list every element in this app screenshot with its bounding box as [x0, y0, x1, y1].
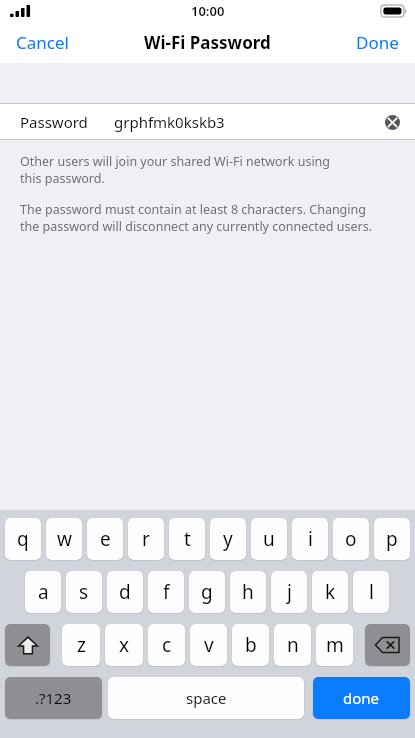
staticText: Other users will join your shared Wi-Fi … [20, 153, 331, 187]
button[interactable]: a [25, 571, 61, 613]
button[interactable]: x [105, 624, 143, 666]
button[interactable]: d [107, 571, 143, 613]
button[interactable]: Cancel [0, 23, 85, 62]
button[interactable]: s [66, 571, 102, 613]
button[interactable]: o [333, 518, 369, 560]
staticText: g [201, 579, 213, 605]
staticText: k [325, 579, 336, 605]
button[interactable]: v [190, 624, 227, 666]
button[interactable]: u [251, 518, 287, 560]
staticText: r [142, 526, 150, 552]
staticText: f [163, 579, 170, 605]
staticText: i [308, 526, 313, 552]
button[interactable]: Shift [5, 624, 50, 666]
staticText: c [162, 632, 172, 658]
button[interactable]: m [316, 624, 353, 666]
button[interactable]: n [274, 624, 311, 666]
staticText: .?123 [35, 688, 72, 708]
button[interactable]: q [5, 518, 41, 560]
button[interactable]: y [210, 518, 246, 560]
staticText: a [38, 579, 49, 605]
button[interactable]: c [148, 624, 185, 666]
staticText: v [204, 632, 214, 658]
button[interactable]: space [108, 677, 304, 719]
staticText: b [245, 632, 257, 658]
staticText: 10:00 [191, 2, 225, 20]
button[interactable]: g [189, 571, 225, 613]
staticText: Done [356, 31, 399, 54]
staticText: Wi-Fi Password [144, 31, 271, 54]
button[interactable]: p [374, 518, 410, 560]
staticText: e [100, 526, 111, 552]
button[interactable]: .?123 [5, 677, 102, 719]
button[interactable]: Backspace [365, 624, 410, 666]
staticText: p [386, 526, 398, 552]
staticText: o [345, 526, 357, 552]
button[interactable]: Done [340, 23, 415, 62]
staticText: j [287, 579, 292, 605]
button[interactable]: w [46, 518, 82, 560]
staticText: h [242, 579, 254, 605]
staticText: Password [20, 112, 88, 132]
button[interactable]: h [230, 571, 266, 613]
staticText: Cancel [16, 31, 69, 54]
staticText: The password must contain at least 8 cha… [20, 201, 373, 235]
button[interactable]: r [128, 518, 164, 560]
staticText: x [119, 632, 130, 658]
staticText: d [119, 579, 131, 605]
staticText: w [57, 526, 72, 552]
button[interactable]: j [271, 571, 307, 613]
button[interactable]: f [148, 571, 184, 613]
staticText: t [184, 526, 191, 552]
staticText: n [287, 632, 299, 658]
staticText: z [77, 632, 86, 658]
button[interactable]: k [312, 571, 348, 613]
staticText: grphfmk0kskb3 [114, 112, 225, 132]
staticText: y [223, 526, 233, 552]
staticText: q [17, 526, 29, 552]
staticText: done [343, 688, 380, 708]
staticText: l [369, 579, 374, 605]
button[interactable]: b [232, 624, 269, 666]
button[interactable]: z [62, 624, 100, 666]
button[interactable]: Password [0, 104, 415, 139]
staticText: m [326, 632, 344, 658]
button[interactable]: t [169, 518, 205, 560]
button[interactable]: done [313, 677, 410, 719]
button[interactable]: l [353, 571, 389, 613]
staticText: u [263, 526, 275, 552]
button[interactable]: Clear text [377, 107, 407, 137]
button[interactable]: e [87, 518, 123, 560]
staticText: space [186, 688, 227, 708]
button[interactable]: i [292, 518, 328, 560]
staticText: s [79, 579, 89, 605]
